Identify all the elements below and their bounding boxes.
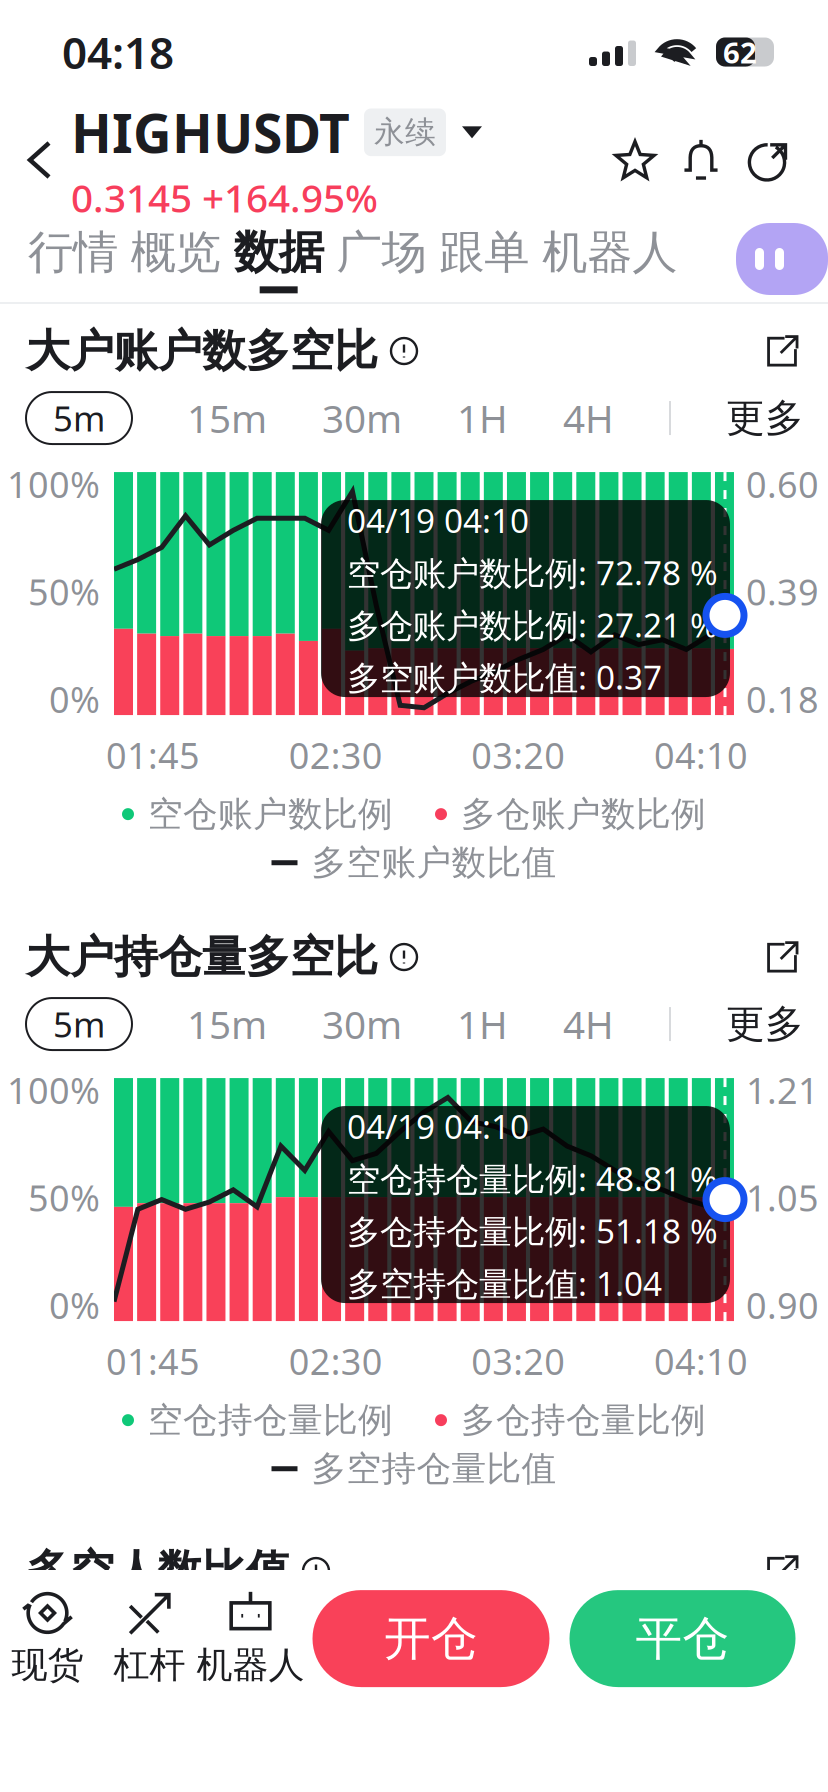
button[interactable]: 概览 bbox=[131, 225, 221, 293]
staticText: 01:45 bbox=[106, 1337, 200, 1385]
staticText: 多空账户数比值 bbox=[311, 841, 556, 884]
button[interactable]: Open chart bbox=[760, 935, 804, 979]
button[interactable]: 行情 bbox=[28, 225, 118, 293]
staticText: 0.90 bbox=[746, 1281, 819, 1329]
staticText: 空仓账户数比例: 72.78 % bbox=[347, 550, 718, 595]
button[interactable]: 5m bbox=[26, 392, 132, 444]
staticText: 多仓持仓量比例: 51.18 % bbox=[347, 1209, 718, 1253]
button[interactable]: 更多 bbox=[726, 394, 804, 442]
staticText: 0.39 bbox=[746, 568, 819, 615]
staticText: 开仓 bbox=[384, 1610, 478, 1667]
button[interactable]: 跟单 bbox=[439, 225, 529, 293]
staticText: 62 bbox=[723, 32, 757, 71]
staticText: 大户账户数多空比 bbox=[26, 324, 378, 378]
staticText: 多仓账户数比例 bbox=[461, 793, 706, 835]
staticText: 5m bbox=[53, 395, 105, 441]
staticText: 机器人 bbox=[542, 225, 677, 280]
staticText: 0.3145 +164.95% bbox=[71, 172, 378, 223]
button[interactable]: Price alerts bbox=[668, 123, 734, 197]
button[interactable]: 15m bbox=[187, 998, 267, 1050]
button[interactable]: 4H bbox=[563, 392, 614, 444]
staticText: 永续 bbox=[374, 113, 436, 151]
staticText: 03:20 bbox=[471, 731, 565, 779]
staticText: 多空账户数比值: 0.37 bbox=[347, 655, 662, 699]
staticText: 大户持仓量多空比 bbox=[26, 930, 378, 984]
staticText: 多仓持仓量比例 bbox=[461, 1399, 706, 1441]
button[interactable]: 现货 bbox=[0, 1590, 101, 1687]
staticText: 100% bbox=[7, 1066, 100, 1114]
staticText: 5m bbox=[53, 1001, 105, 1047]
staticText: 空仓持仓量比例: 48.81 % bbox=[347, 1156, 718, 1201]
button[interactable]: 机器人 bbox=[197, 1590, 303, 1687]
button[interactable]: Share bbox=[734, 124, 800, 196]
button[interactable]: Open chart bbox=[760, 329, 804, 373]
staticText: 50% bbox=[28, 568, 100, 615]
staticText: 0% bbox=[49, 1281, 100, 1329]
button[interactable]: Back bbox=[0, 119, 71, 201]
staticText: 50% bbox=[28, 1174, 100, 1221]
button[interactable]: 更多 bbox=[726, 1000, 804, 1048]
staticText: 行情 bbox=[28, 225, 118, 280]
staticText: 1H bbox=[457, 392, 508, 444]
staticText: HIGHUSDT bbox=[71, 97, 350, 168]
staticText: 0% bbox=[49, 675, 100, 723]
button[interactable]: 杠杆 bbox=[101, 1590, 197, 1687]
staticText: 现货 bbox=[11, 1643, 83, 1687]
staticText: 02:30 bbox=[289, 731, 383, 779]
staticText: 数据 bbox=[234, 225, 324, 280]
button[interactable]: 15m bbox=[187, 392, 267, 444]
staticText: 更多 bbox=[726, 394, 804, 442]
staticText: 多空持仓量比值 bbox=[311, 1447, 556, 1490]
staticText: 1H bbox=[457, 998, 508, 1050]
staticText: 1.05 bbox=[746, 1174, 819, 1221]
button[interactable]: Favorite bbox=[602, 124, 668, 196]
staticText: 04/19 04:10 bbox=[347, 498, 529, 542]
staticText: 04:10 bbox=[654, 731, 748, 779]
staticText: 04:10 bbox=[654, 1337, 748, 1385]
button[interactable]: 平仓 bbox=[569, 1590, 795, 1687]
staticText: 更多 bbox=[726, 1000, 804, 1048]
staticText: 0.18 bbox=[746, 675, 819, 723]
staticText: 15m bbox=[187, 392, 267, 444]
button[interactable]: 开仓 bbox=[312, 1590, 549, 1687]
staticText: 4H bbox=[563, 998, 614, 1050]
staticText: 空仓持仓量比例 bbox=[148, 1399, 393, 1441]
button[interactable]: 4H bbox=[563, 998, 614, 1050]
staticText: 04:18 bbox=[62, 23, 174, 81]
staticText: 04/19 04:10 bbox=[347, 1104, 529, 1148]
staticText: 多仓账户数比例: 27.21 % bbox=[347, 602, 718, 647]
button[interactable]: 广场 bbox=[336, 225, 426, 293]
staticText: 多空持仓量比值: 1.04 bbox=[347, 1261, 662, 1305]
staticText: 100% bbox=[7, 460, 100, 508]
button[interactable]: 1H bbox=[457, 392, 508, 444]
staticText: 01:45 bbox=[106, 731, 200, 779]
staticText: 02:30 bbox=[289, 1337, 383, 1385]
staticText: 30m bbox=[322, 392, 402, 444]
staticText: 机器人 bbox=[196, 1643, 304, 1687]
button[interactable]: 1H bbox=[457, 998, 508, 1050]
staticText: 1.21 bbox=[746, 1066, 819, 1114]
staticText: 30m bbox=[322, 998, 402, 1050]
staticText: 跟单 bbox=[439, 225, 529, 280]
staticText: 03:20 bbox=[471, 1337, 565, 1385]
button[interactable]: 机器人 bbox=[542, 225, 677, 293]
staticText: 平仓 bbox=[635, 1610, 729, 1667]
button[interactable]: 5m bbox=[26, 998, 132, 1050]
button[interactable]: 30m bbox=[322, 392, 402, 444]
button[interactable]: 30m bbox=[322, 998, 402, 1050]
staticText: 4H bbox=[563, 392, 614, 444]
staticText: 广场 bbox=[336, 225, 426, 280]
staticText: 0.60 bbox=[746, 460, 819, 508]
staticText: 多空人数比值 bbox=[26, 1544, 290, 1598]
staticText: 杠杆 bbox=[113, 1643, 185, 1687]
staticText: 15m bbox=[187, 998, 267, 1050]
staticText: 空仓账户数比例 bbox=[148, 793, 393, 835]
button[interactable]: 数据 bbox=[234, 225, 324, 293]
staticText: 概览 bbox=[131, 225, 221, 280]
